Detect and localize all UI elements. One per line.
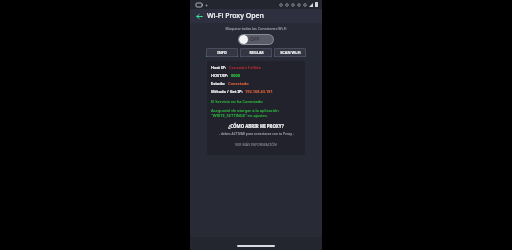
staticText: REGLAS bbox=[249, 50, 264, 55]
staticText: HOST/IP: bbox=[211, 73, 229, 78]
staticText: Estado: bbox=[211, 81, 226, 86]
staticText: Bloquear todas las Conexiones Wi-Fi bbox=[225, 26, 287, 31]
staticText: Método / Get IP: bbox=[211, 89, 243, 94]
staticText: Conexión Fallida bbox=[229, 65, 261, 70]
staticText: Aseguraté de otorgar a la aplicación "WR… bbox=[211, 108, 279, 119]
staticText: 0000 bbox=[231, 73, 240, 78]
staticText: El Servicio no ha Conectado bbox=[211, 99, 263, 104]
staticText: Conectado bbox=[228, 81, 249, 86]
button[interactable]: SCAN Wi-Fi bbox=[274, 48, 306, 57]
staticText: VER MÁS INFORMACIÓN bbox=[235, 142, 277, 147]
staticText: INFO bbox=[217, 50, 227, 55]
button[interactable]: INFO bbox=[206, 48, 238, 57]
staticText: Host IP: bbox=[211, 65, 227, 70]
button[interactable]: REGLAS bbox=[240, 48, 272, 57]
staticText: - debes ACTIVAR para conectarse con tu P… bbox=[219, 131, 294, 136]
button[interactable]: Host IP: bbox=[207, 61, 305, 155]
staticText: Wi-Fi Proxy Open bbox=[207, 11, 264, 21]
staticText: SCAN Wi-Fi bbox=[280, 50, 301, 55]
button[interactable]: VER MÁS INFORMACIÓN bbox=[211, 142, 301, 147]
button[interactable]: OFF bbox=[238, 34, 274, 45]
staticText: OFF bbox=[250, 36, 260, 43]
button[interactable]: Back bbox=[193, 10, 205, 22]
staticText: ¿CÓMO ABRIR MI PROXY? bbox=[228, 123, 284, 129]
staticText: 192.168.43.181 bbox=[245, 89, 273, 94]
